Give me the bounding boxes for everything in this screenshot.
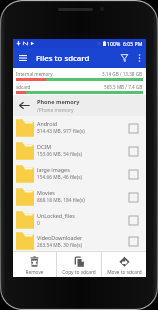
staticText: Remove: [25, 269, 44, 276]
button[interactable]: Select VideoDownloader: [128, 236, 138, 246]
staticText: 154.66 MB, 46 file(s): [37, 174, 82, 181]
staticText: Phone memory: [37, 98, 80, 106]
other: Back: [13, 95, 35, 116]
staticText: Android: [37, 120, 58, 127]
staticText: Files to sdcard: [36, 53, 90, 64]
button[interactable]: Back: [13, 95, 146, 116]
button[interactable]: Android: [13, 116, 146, 139]
button[interactable]: Select Movies: [128, 192, 138, 202]
staticText: 263.54 MB, 30 file(s): [37, 242, 82, 249]
button[interactable]: DCIM: [13, 139, 146, 162]
staticText: 100% 6:05 PM: [107, 40, 143, 47]
button[interactable]: large images: [13, 162, 146, 185]
button[interactable]: Select Android: [128, 123, 138, 133]
button[interactable]: More options: [133, 48, 146, 68]
button[interactable]: Filter: [115, 48, 133, 68]
button[interactable]: Movies: [13, 185, 146, 208]
staticText: Movies: [37, 189, 55, 196]
staticText: 868.18 MB, 184 file(s): [37, 197, 85, 204]
button[interactable]: Select DCIM: [128, 146, 138, 156]
button[interactable]: UnLocked_files: [13, 208, 146, 231]
staticText: Internal memory: [16, 71, 53, 77]
staticText: large images: [37, 166, 70, 173]
staticText: /Phone memory: [37, 107, 74, 114]
button[interactable]: Select large images: [128, 169, 138, 179]
button[interactable]: Move to sdcard: [102, 252, 146, 277]
staticText: sdcard: [16, 84, 31, 90]
staticText: 3.14 GB / 13.38 GB: [102, 71, 143, 77]
staticText: Copy to sdcard: [62, 269, 96, 276]
staticText: VideoDownloader: [37, 234, 83, 241]
staticText: 565.5 MB / 7.4 GB: [104, 84, 143, 90]
staticText: Move to sdcard: [107, 269, 142, 276]
staticText: DCIM: [37, 143, 52, 150]
button[interactable]: Select UnLocked_files: [128, 215, 138, 225]
button[interactable]: VideoDownloader: [13, 231, 146, 251]
button[interactable]: Remove: [13, 252, 56, 277]
button[interactable]: Navigation menu: [13, 48, 32, 68]
button[interactable]: Copy to sdcard: [57, 252, 101, 277]
staticText: UnLocked_files: [37, 212, 75, 219]
staticText: 0: [37, 220, 40, 227]
staticText: 153.06 MB, 54 file(s): [37, 151, 82, 158]
staticText: 314.43 MB, 977 file(s): [37, 128, 85, 135]
